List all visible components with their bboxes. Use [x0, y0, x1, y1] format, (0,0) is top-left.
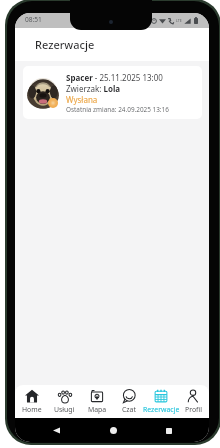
staticText: Czat [122, 405, 136, 414]
button[interactable]: Home [110, 427, 117, 434]
staticText: 08:51 [25, 15, 42, 24]
staticText: LTE [176, 18, 182, 23]
staticText: Mapa [88, 405, 107, 414]
staticText: Zwierzak: Lola [66, 83, 121, 94]
staticText: Rezerwacje [143, 405, 180, 414]
button[interactable]: Rezerwacje [145, 385, 177, 418]
button[interactable]: Spacer - 25.11.2025 13:00 [23, 66, 202, 119]
staticText: Spacer - 25.11.2025 13:00 [66, 72, 163, 83]
staticText: Wysłana [66, 94, 98, 105]
staticText: Usługi [54, 405, 75, 414]
button[interactable]: Back [53, 427, 60, 434]
button[interactable]: Home [15, 385, 48, 418]
staticText: Rezerwacje [35, 37, 95, 52]
staticText: Ostatnia zmiana: 24.09.2025 13:16 [66, 105, 169, 114]
button[interactable]: Czat [113, 385, 145, 418]
staticText: Profil [185, 405, 202, 414]
button[interactable]: Profil [177, 385, 209, 418]
staticText: Home [22, 405, 42, 414]
button[interactable]: Recent apps [166, 428, 172, 434]
button[interactable]: Mapa [81, 385, 113, 418]
button[interactable]: Usługi [48, 385, 81, 418]
